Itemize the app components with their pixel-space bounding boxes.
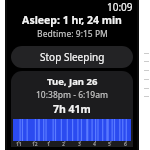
staticText: 7h 41m	[53, 102, 91, 116]
staticText: Tue, Jan 26	[47, 75, 98, 88]
staticText: Bedtime: 9:15 PM	[37, 28, 108, 40]
staticText: 5	[108, 141, 111, 147]
staticText: 10:38pm - 6:19am	[36, 89, 109, 101]
staticText: 11	[16, 141, 22, 147]
staticText: 4	[93, 141, 96, 147]
button[interactable]: Tue, Jan 26	[11, 71, 133, 147]
staticText: 3	[78, 141, 81, 147]
staticText: 2	[62, 141, 65, 147]
button[interactable]: Stop Sleeping	[11, 46, 133, 68]
staticText: 6	[124, 141, 127, 147]
staticText: 10:09	[107, 0, 133, 13]
staticText: 12	[32, 141, 38, 147]
staticText: Stop Sleeping	[40, 50, 105, 64]
staticText: 1	[47, 141, 50, 147]
staticText: Asleep: 1 hr, 24 min	[22, 13, 122, 27]
